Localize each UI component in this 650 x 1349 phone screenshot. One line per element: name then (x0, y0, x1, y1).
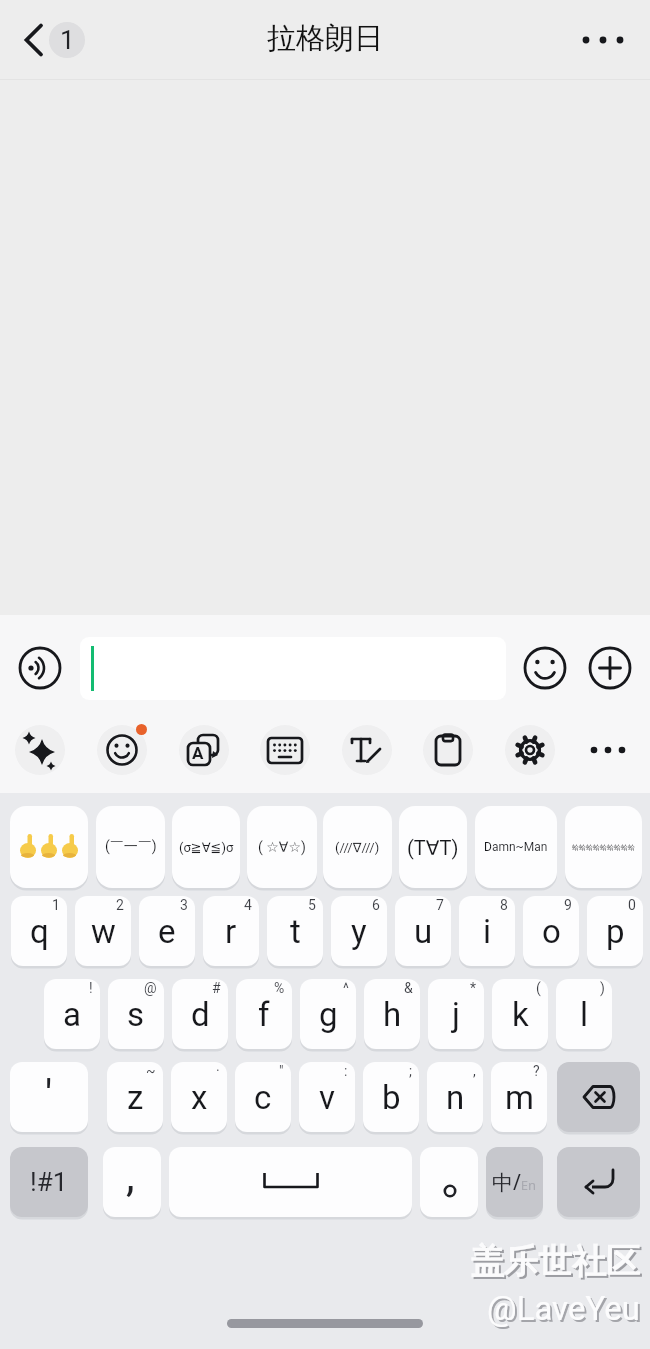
button[interactable]: w (75, 896, 131, 966)
staticText: n (446, 1078, 465, 1117)
button[interactable]: f (236, 979, 292, 1049)
button[interactable] (521, 644, 569, 692)
button[interactable] (586, 644, 634, 692)
button[interactable] (557, 1147, 640, 1217)
staticText: % (274, 980, 285, 996)
staticText: 5 (308, 897, 316, 913)
staticText: @LaveYeu (487, 1289, 640, 1328)
staticText: 拉格朗日 (267, 20, 383, 57)
staticText: 6 (372, 897, 380, 913)
button[interactable]: x (171, 1062, 227, 1132)
staticText: 1 (52, 897, 60, 913)
staticText: ) (600, 980, 605, 996)
staticText: 1 (60, 25, 75, 55)
button[interactable] (420, 1147, 478, 1217)
staticText: 中/En (492, 1168, 537, 1197)
button[interactable] (260, 725, 310, 775)
staticText: j (452, 995, 460, 1034)
button[interactable]: p (587, 896, 643, 966)
button[interactable] (342, 725, 392, 775)
button[interactable]: (￣一￣) (96, 806, 165, 888)
staticText: r (225, 912, 237, 951)
staticText: t (290, 912, 301, 951)
staticText: m (505, 1078, 534, 1117)
staticText: ( (536, 980, 541, 996)
button[interactable]: l (556, 979, 612, 1049)
button[interactable]: (///∇///) (323, 806, 392, 888)
button[interactable] (97, 725, 147, 775)
button[interactable]: ' (10, 1062, 88, 1132)
staticText: u (414, 912, 433, 951)
button[interactable]: t (267, 896, 323, 966)
button[interactable] (10, 806, 88, 888)
staticText: * (470, 980, 477, 996)
button[interactable]: !#1 (10, 1147, 88, 1217)
button[interactable]: 1 (49, 22, 85, 58)
staticText: (￣一￣) (105, 838, 157, 856)
button[interactable] (14, 18, 58, 62)
button[interactable]: Damn~Man (475, 806, 557, 888)
button[interactable]: d (172, 979, 228, 1049)
button[interactable]: i (459, 896, 515, 966)
staticText: 2 (116, 897, 124, 913)
staticText: i (483, 912, 492, 951)
button[interactable]: n (427, 1062, 483, 1132)
staticText: 0 (628, 897, 636, 913)
staticText: l (580, 995, 589, 1034)
button[interactable]: r (203, 896, 259, 966)
staticText: , (473, 1063, 476, 1079)
button[interactable] (169, 1147, 412, 1217)
staticText: y (351, 912, 367, 951)
button[interactable]: j (428, 979, 484, 1049)
staticText: v (319, 1078, 335, 1117)
staticText: o (542, 912, 561, 951)
button[interactable] (80, 637, 506, 700)
button[interactable]: (T∀T) (399, 806, 467, 888)
button[interactable]: m (491, 1062, 547, 1132)
staticText: (///∇///) (335, 840, 380, 855)
staticText: p (606, 912, 625, 951)
button[interactable]: a (44, 979, 100, 1049)
staticText: ? (533, 1063, 540, 1079)
button[interactable] (15, 725, 65, 775)
staticText: k (512, 995, 529, 1034)
staticText: # (212, 980, 221, 996)
button[interactable]: u (395, 896, 451, 966)
staticText: ( ☆∀☆) (258, 839, 306, 855)
staticText: & (404, 980, 413, 996)
button[interactable]: y (331, 896, 387, 966)
button[interactable]: A (179, 725, 229, 775)
button[interactable]: k (492, 979, 548, 1049)
button[interactable] (574, 18, 634, 62)
button[interactable]: o (523, 896, 579, 966)
button[interactable]: 蛤蛤蛤蛤蛤蛤蛤蛤蛤 (565, 806, 642, 888)
staticText: ' (45, 1071, 53, 1120)
button[interactable]: h (364, 979, 420, 1049)
staticText: (σ≧∀≦)σ (179, 840, 234, 855)
button[interactable]: , (103, 1147, 161, 1217)
button[interactable] (423, 725, 473, 775)
staticText: x (191, 1078, 208, 1117)
staticText: f (258, 995, 270, 1034)
button[interactable]: 中/En (486, 1147, 543, 1217)
staticText: 4 (244, 897, 252, 913)
button[interactable]: v (299, 1062, 355, 1132)
button[interactable]: z (107, 1062, 163, 1132)
button[interactable]: q (11, 896, 67, 966)
staticText: s (127, 995, 145, 1034)
staticText: h (383, 995, 402, 1034)
staticText: · (216, 1063, 220, 1079)
button[interactable] (505, 725, 555, 775)
button[interactable]: (σ≧∀≦)σ (172, 806, 240, 888)
staticText: A (192, 743, 204, 763)
button[interactable]: b (363, 1062, 419, 1132)
button[interactable]: s (108, 979, 164, 1049)
button[interactable]: ( ☆∀☆) (247, 806, 317, 888)
button[interactable] (16, 644, 64, 692)
button[interactable]: e (139, 896, 195, 966)
staticText: " (279, 1063, 284, 1079)
button[interactable] (557, 1062, 640, 1132)
button[interactable]: g (300, 979, 356, 1049)
button[interactable]: c (235, 1062, 291, 1132)
button[interactable] (583, 725, 633, 775)
